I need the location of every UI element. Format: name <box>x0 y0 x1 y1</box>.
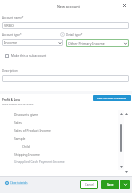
button[interactable]: Sales of Product Income <box>0 127 132 135</box>
staticText: Close tutorials <box>10 181 28 185</box>
staticText: Shipping Income <box>14 153 40 157</box>
button[interactable]: Save <box>101 180 119 189</box>
button[interactable]: VRBO <box>2 22 129 29</box>
staticText: Make this a subaccount <box>11 54 47 58</box>
button[interactable]: Unapplied Cash Payment Income <box>0 158 132 166</box>
button[interactable]: Other Primary Income <box>66 39 129 47</box>
staticText: Sales of Product Income <box>14 129 51 133</box>
button[interactable]: Cancel <box>80 180 98 189</box>
staticText: Discounts given <box>14 113 39 117</box>
staticText: Other Primary Income <box>68 41 124 46</box>
other: Scroll up <box>120 113 123 115</box>
button[interactable]: Child <box>0 143 132 151</box>
button[interactable]: Shipping Income <box>0 151 132 159</box>
staticText: Account type* <box>2 33 22 37</box>
button[interactable]: More save options <box>120 180 130 189</box>
button[interactable]: Discounts given <box>0 111 132 119</box>
staticText: NEW ACCOUNT PREVIEW <box>97 97 127 100</box>
staticText: Sample <box>14 137 26 141</box>
other: Scroll down <box>125 171 128 173</box>
other: Scroll up <box>125 113 128 115</box>
staticText: Income <box>4 40 58 45</box>
button[interactable]: NEW ACCOUNT PREVIEW <box>93 95 131 101</box>
staticText: Sales <box>14 121 22 125</box>
staticText: Profit & Loss <box>2 98 21 102</box>
button[interactable] <box>2 75 129 82</box>
other: Scroll down <box>120 166 123 168</box>
staticText: New account <box>57 4 80 9</box>
button[interactable]: Sales <box>0 119 132 127</box>
button[interactable]: Income <box>2 39 63 46</box>
button[interactable]: Sample <box>0 135 132 143</box>
staticText: Child <box>22 145 30 149</box>
staticText: Cancel <box>85 183 94 187</box>
button[interactable]: Close <box>120 1 129 10</box>
staticText: Save <box>107 183 114 187</box>
staticText: Description <box>2 69 18 73</box>
staticText: Account name* <box>2 16 24 20</box>
staticText: VRBO <box>4 23 128 28</box>
staticText: Detail type* <box>66 33 83 37</box>
button[interactable]: Close tutorials <box>5 181 28 185</box>
staticText: similar accounts as of 05/19/2025 <box>2 103 34 106</box>
staticText: Unapplied Cash Payment Income <box>14 160 65 164</box>
button[interactable]: Make this a subaccount <box>5 54 47 58</box>
